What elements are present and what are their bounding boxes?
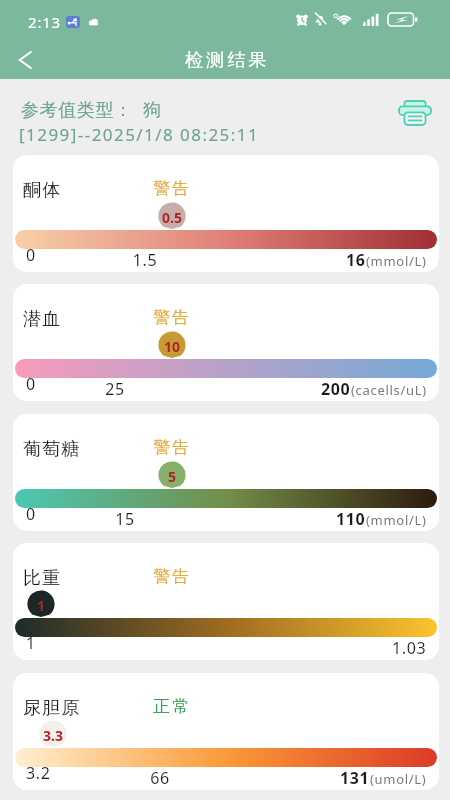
staticText: 3.2 <box>26 762 51 784</box>
staticText: 200 <box>321 378 351 400</box>
staticText: 比重 <box>23 567 62 590</box>
staticText: 参考值类型： 狗 <box>21 97 162 122</box>
staticText: 警告 <box>152 566 190 587</box>
staticText: (mmol/L) <box>366 252 427 270</box>
staticText: (mmol/L) <box>366 511 427 529</box>
staticText: 16 <box>346 249 366 271</box>
staticText: [1299]--2025/1/8 08:25:11 <box>19 123 260 146</box>
staticText: 1 <box>26 632 36 654</box>
staticText: 3.3 <box>33 726 73 745</box>
staticText: 0.5 <box>152 208 192 227</box>
staticText: (umol/L) <box>370 770 427 788</box>
staticText: 131 <box>340 767 370 789</box>
staticText: (cacells/uL) <box>351 381 427 399</box>
staticText: 1.5 <box>120 249 170 271</box>
staticText: 正常 <box>152 696 190 717</box>
staticText: 潜血 <box>23 308 62 331</box>
staticText: 1 <box>21 596 61 615</box>
staticText: 尿胆原 <box>23 697 81 720</box>
button[interactable]: Print <box>399 101 431 125</box>
button[interactable]: 潜血 <box>13 284 439 401</box>
staticText: 0 <box>26 503 36 525</box>
button[interactable]: 葡萄糖 <box>13 414 439 531</box>
staticText: 5 <box>152 467 192 486</box>
staticText: 1.03 <box>392 637 427 659</box>
staticText: 检测结果 <box>185 49 270 72</box>
staticText: 25 <box>90 378 140 400</box>
staticText: 警告 <box>152 437 190 458</box>
staticText: 110 <box>336 508 366 530</box>
staticText: 2:13 <box>28 12 61 32</box>
button[interactable]: 尿胆原 <box>13 673 439 790</box>
staticText: 15 <box>100 508 150 530</box>
staticText: 警告 <box>152 307 190 328</box>
staticText: 10 <box>152 337 192 356</box>
staticText: 葡萄糖 <box>23 438 81 461</box>
staticText: 酮体 <box>23 179 62 202</box>
button[interactable]: Back <box>7 42 43 78</box>
staticText: 66 <box>135 767 185 789</box>
button[interactable]: 酮体 <box>13 155 439 272</box>
staticText: 警告 <box>152 178 190 199</box>
button[interactable]: 比重 <box>13 543 439 660</box>
staticText: 0 <box>26 244 36 266</box>
staticText: 0 <box>26 373 36 395</box>
